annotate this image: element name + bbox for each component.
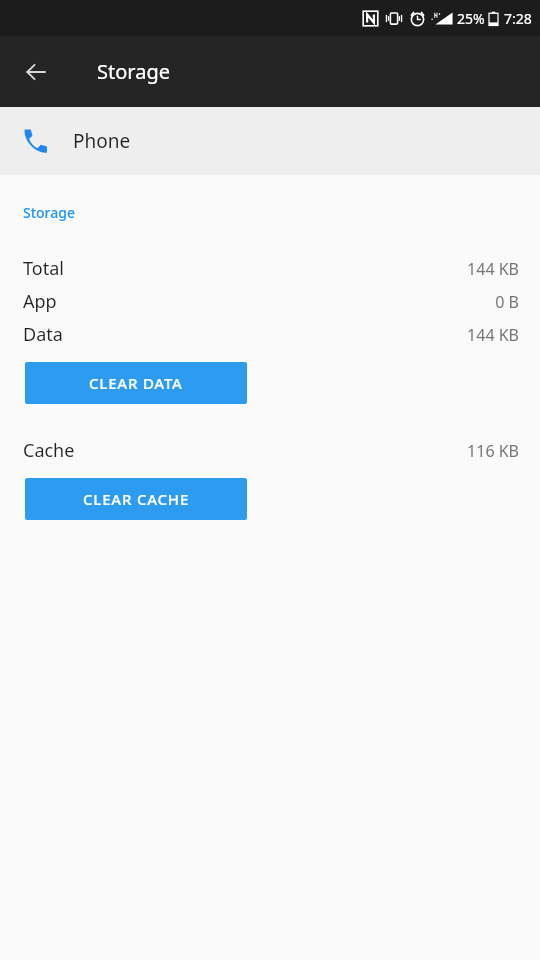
staticText: 116 KB: [467, 440, 519, 462]
staticText: Cache: [23, 438, 75, 463]
staticText: Storage: [23, 203, 75, 222]
staticText: App: [23, 289, 57, 314]
staticText: Storage: [97, 58, 170, 85]
staticText: 25%: [457, 9, 485, 28]
staticText: 144 KB: [467, 324, 519, 346]
button[interactable]: Phone: [0, 107, 540, 175]
staticText: 7:28: [504, 9, 532, 28]
staticText: Data: [23, 322, 63, 347]
staticText: CLEAR CACHE: [83, 489, 190, 509]
button[interactable]: CLEAR DATA: [25, 362, 247, 404]
staticText: Phone: [73, 128, 131, 154]
staticText: 144 KB: [467, 258, 519, 280]
staticText: Total: [23, 256, 64, 281]
staticText: CLEAR DATA: [89, 373, 183, 393]
button[interactable]: CLEAR CACHE: [25, 478, 247, 520]
staticText: 0 B: [495, 291, 519, 313]
button[interactable]: Back: [12, 48, 60, 96]
